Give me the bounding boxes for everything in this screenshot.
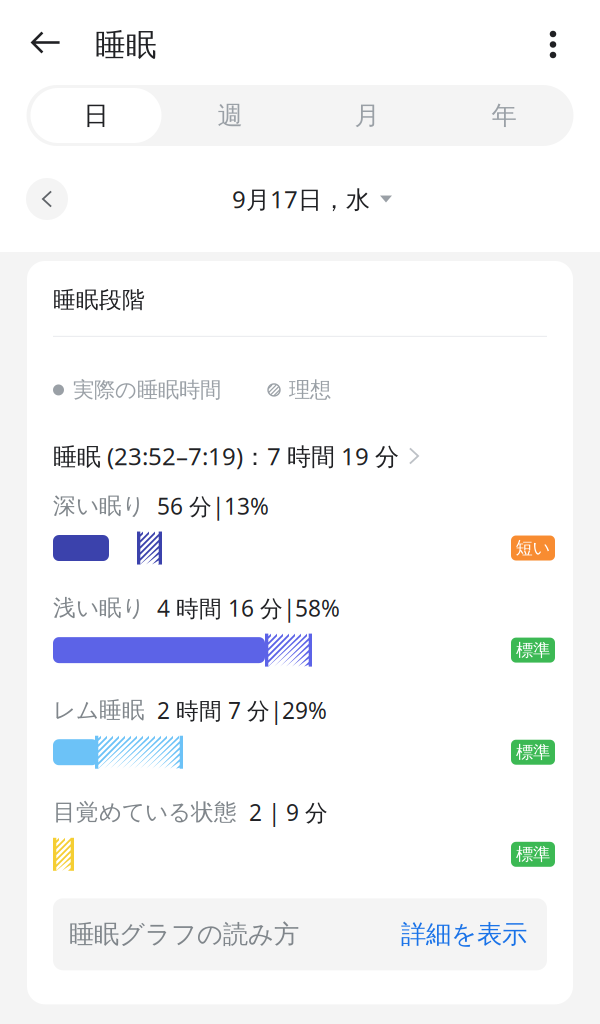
staticText: 浅い眠り — [53, 594, 145, 622]
staticText: 目覚めている状態 — [53, 798, 237, 826]
staticText: 年 — [491, 100, 516, 131]
button[interactable]: 週 — [161, 88, 298, 143]
staticText: 理想 — [289, 377, 331, 403]
staticText: 睡眠段階 — [53, 286, 145, 314]
staticText: 標準 — [516, 742, 550, 763]
button[interactable]: 年 — [435, 88, 572, 143]
staticText: 標準 — [516, 844, 550, 865]
button[interactable]: 睡眠 (23:52–7:19)：7 時間 19 分 — [27, 403, 573, 472]
button[interactable]: Back — [0, 0, 95, 85]
staticText: 睡眠 — [95, 26, 157, 64]
button[interactable]: 月 — [298, 88, 435, 143]
staticText: レム睡眠 — [53, 696, 145, 724]
staticText: 月 — [354, 100, 379, 131]
staticText: 標準 — [516, 639, 550, 661]
staticText: 睡眠 (23:52–7:19)：7 時間 19 分 — [53, 440, 399, 472]
staticText: 短い — [515, 537, 550, 559]
staticText: 詳細を表示 — [401, 919, 527, 950]
staticText: 実際の睡眠時間 — [73, 377, 221, 403]
staticText: 56 分|13% — [157, 491, 269, 521]
staticText: 9月17日，水 — [232, 183, 370, 215]
button[interactable]: More options — [526, 0, 600, 85]
button[interactable]: Previous day — [19, 171, 75, 227]
staticText: 4 時間 16 分|58% — [157, 593, 340, 623]
staticText: 2 時間 7 分|29% — [157, 695, 327, 725]
staticText: 睡眠グラフの読み方 — [69, 919, 299, 950]
button[interactable]: 日 — [30, 88, 161, 143]
staticText: 深い眠り — [53, 492, 145, 520]
button[interactable]: 睡眠グラフの読み方 — [53, 898, 547, 970]
staticText: 週 — [217, 100, 242, 131]
staticText: 日 — [83, 100, 108, 131]
staticText: 2 | 9 分 — [249, 797, 328, 827]
